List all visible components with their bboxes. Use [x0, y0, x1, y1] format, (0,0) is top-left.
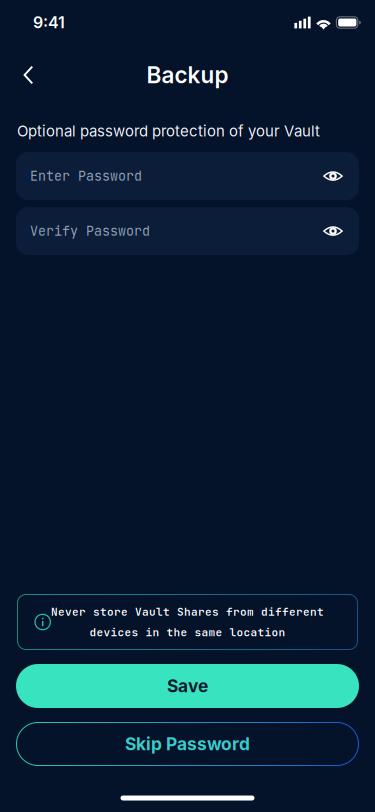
staticText: Never store Vault Shares from different [51, 604, 324, 619]
button[interactable]: Show password [317, 160, 349, 192]
staticText: 9:41 [33, 13, 65, 32]
staticText: Verify Password [30, 222, 150, 240]
button[interactable]: Show verify password [317, 215, 349, 247]
staticText: Save [167, 675, 208, 696]
staticText: Enter Password [30, 167, 142, 185]
button[interactable]: Skip Password [16, 722, 359, 766]
staticText: devices in the same location [89, 625, 285, 640]
staticText: Optional password protection of your Vau… [17, 122, 320, 140]
staticText: Skip Password [125, 733, 250, 754]
button[interactable]: Save [16, 664, 359, 708]
staticText: Backup [146, 61, 228, 89]
button[interactable]: Back [6, 53, 50, 97]
